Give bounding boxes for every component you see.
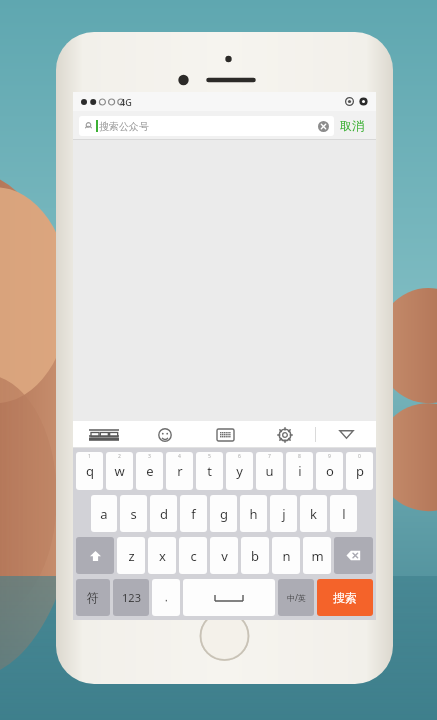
button[interactable]: Backspace	[334, 537, 373, 574]
staticText: p	[356, 462, 364, 480]
button[interactable]: 搜索公众号	[79, 116, 334, 136]
button[interactable]: b	[241, 537, 269, 574]
staticText: d	[160, 505, 168, 523]
staticText: 3	[148, 453, 151, 460]
button[interactable]: Clear	[318, 121, 329, 132]
button[interactable]: 4	[166, 452, 193, 490]
button[interactable]: k	[300, 495, 327, 532]
staticText: u	[265, 462, 274, 480]
staticText: 中/英	[287, 592, 306, 603]
staticText: e	[146, 462, 154, 480]
staticText: v	[221, 547, 228, 565]
button[interactable]: l	[330, 495, 357, 532]
staticText: r	[177, 462, 183, 480]
staticText: 1	[88, 453, 91, 460]
staticText: a	[100, 505, 108, 523]
staticText: 搜索	[333, 590, 357, 605]
staticText: l	[342, 505, 346, 523]
staticText: 4G	[120, 96, 132, 108]
staticText: o	[326, 462, 334, 480]
staticText: 取消	[340, 118, 364, 133]
button[interactable]: x	[148, 537, 176, 574]
staticText: f	[191, 505, 196, 523]
button[interactable]: 取消	[334, 115, 370, 136]
staticText: 123	[122, 590, 141, 605]
button[interactable]: Hide keyboard	[316, 421, 376, 448]
button[interactable]: j	[270, 495, 297, 532]
staticText: c	[190, 547, 197, 565]
button[interactable]: 7	[256, 452, 283, 490]
staticText: x	[159, 547, 166, 565]
staticText: m	[311, 547, 324, 565]
button[interactable]: a	[91, 495, 117, 532]
button[interactable]: 8	[286, 452, 313, 490]
staticText: y	[236, 462, 243, 480]
button[interactable]: n	[272, 537, 300, 574]
button[interactable]: 中/英	[278, 579, 314, 616]
staticText: i	[298, 462, 302, 480]
button[interactable]: 6	[226, 452, 253, 490]
staticText: 5	[208, 453, 211, 460]
button[interactable]: z	[117, 537, 145, 574]
button[interactable]: Space	[183, 579, 275, 616]
staticText: 0	[358, 453, 361, 460]
button[interactable]: s	[120, 495, 147, 532]
staticText: s	[130, 505, 137, 523]
button[interactable]: f	[180, 495, 207, 532]
button[interactable]: ，	[152, 579, 180, 616]
staticText: w	[114, 462, 125, 480]
button[interactable]: 1	[76, 452, 103, 490]
button[interactable]: Emoji	[135, 421, 195, 448]
staticText: b	[251, 547, 259, 565]
button[interactable]: 3	[136, 452, 163, 490]
staticText: k	[310, 505, 317, 523]
button[interactable]: g	[210, 495, 237, 532]
staticText: 8	[298, 453, 301, 460]
button[interactable]: Input method logo	[73, 421, 135, 448]
staticText: 6	[238, 453, 241, 460]
button[interactable]: 0	[346, 452, 373, 490]
staticText: 搜索公众号	[99, 120, 149, 133]
staticText: ，	[161, 591, 171, 604]
staticText: j	[282, 505, 286, 523]
staticText: h	[249, 505, 258, 523]
button[interactable]: 搜索	[317, 579, 373, 616]
staticText: z	[128, 547, 135, 565]
button[interactable]: Settings	[255, 421, 315, 448]
staticText: 9	[328, 453, 331, 460]
button[interactable]: 123	[113, 579, 149, 616]
staticText: t	[207, 462, 212, 480]
button[interactable]: h	[240, 495, 267, 532]
staticText: 符	[87, 590, 99, 605]
button[interactable]: 9	[316, 452, 343, 490]
button[interactable]: 符	[76, 579, 110, 616]
button[interactable]: 5	[196, 452, 223, 490]
button[interactable]: v	[210, 537, 238, 574]
button[interactable]: 2	[106, 452, 133, 490]
button[interactable]: d	[150, 495, 177, 532]
button[interactable]: Shift	[76, 537, 114, 574]
staticText: g	[220, 505, 228, 523]
button[interactable]: c	[179, 537, 207, 574]
staticText: 2	[118, 453, 121, 460]
staticText: n	[282, 547, 291, 565]
button[interactable]: m	[303, 537, 331, 574]
staticText: 7	[268, 453, 271, 460]
button[interactable]: Keyboard layout	[195, 421, 255, 448]
